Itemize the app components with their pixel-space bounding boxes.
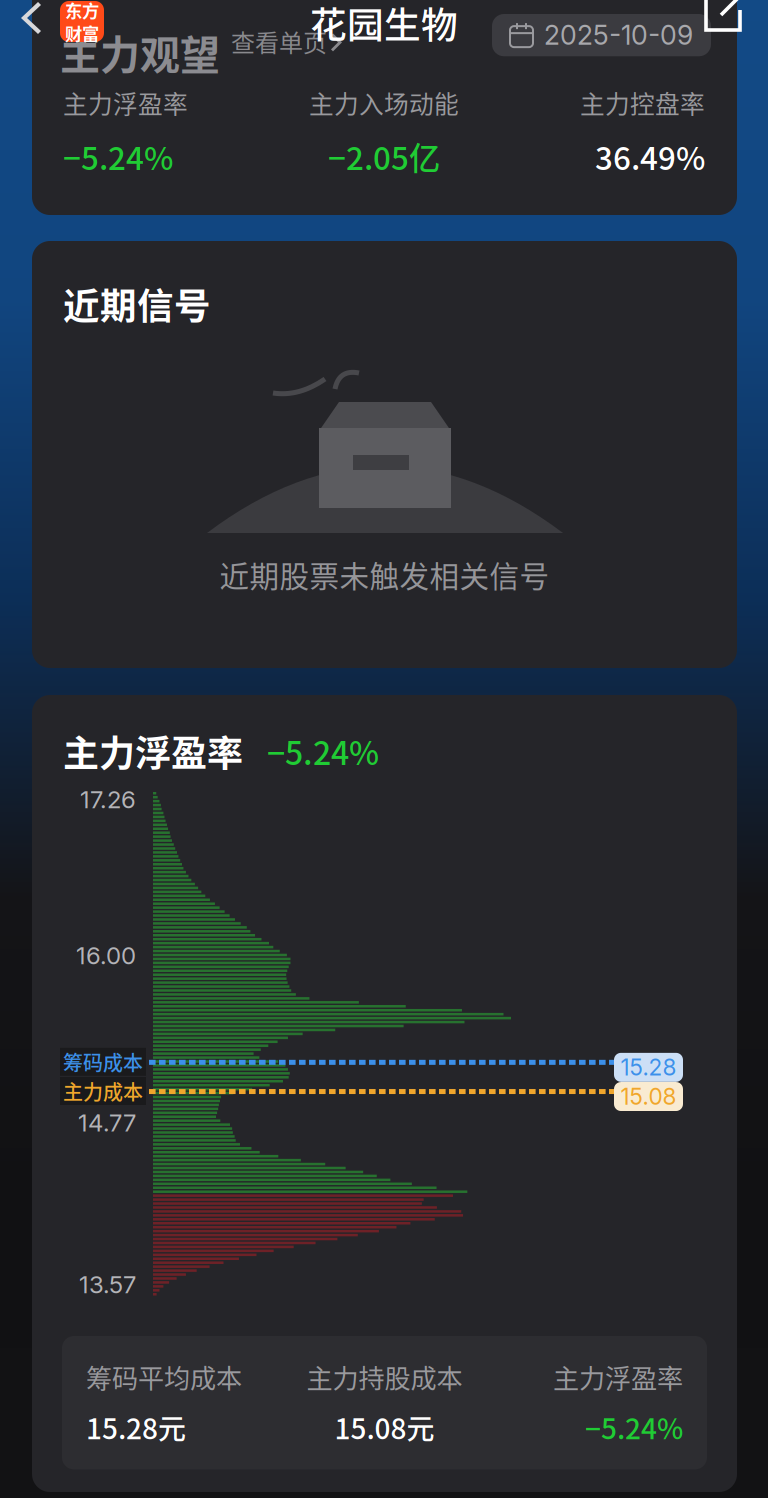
staticText: 15.08元 <box>334 1407 434 1447</box>
staticText: −5.24% <box>267 728 379 774</box>
staticText: 17.26 <box>80 785 136 814</box>
staticText: 主力浮盈率 <box>63 85 188 121</box>
staticText: 筹码平均成本 <box>86 1358 242 1396</box>
staticText: 主力控盘率 <box>580 85 705 121</box>
staticText: 东方 <box>65 0 99 22</box>
staticText: 花园生物 <box>310 0 458 49</box>
staticText: 16.00 <box>76 941 136 970</box>
staticText: 筹码成本 <box>63 1047 143 1076</box>
staticText: 近期股票未触发相关信号 <box>219 553 549 596</box>
button[interactable]: Back <box>10 0 54 41</box>
staticText: 主力入场动能 <box>309 85 459 121</box>
staticText: −5.24% <box>585 1407 683 1447</box>
button[interactable]: Share <box>702 0 748 38</box>
staticText: 15.08 <box>620 1083 676 1110</box>
staticText: 13.57 <box>79 1270 136 1299</box>
staticText: 主力持股成本 <box>306 1358 462 1396</box>
staticText: 36.49% <box>595 134 705 179</box>
staticText: −5.24% <box>63 134 173 179</box>
staticText: 15.28 <box>620 1054 676 1081</box>
staticText: 2025-10-09 <box>544 19 693 51</box>
staticText: 主力观望 <box>60 23 220 81</box>
staticText: 主力浮盈率 <box>553 1358 683 1396</box>
staticText: 财富 <box>65 20 99 46</box>
staticText: 主力成本 <box>63 1077 143 1106</box>
staticText: 近期信号 <box>63 277 211 330</box>
staticText: 主力浮盈率 <box>63 725 243 777</box>
staticText: 查看单页 <box>231 24 327 59</box>
staticText: −2.05亿 <box>328 134 440 179</box>
button[interactable]: 2025-10-09 <box>492 14 711 56</box>
staticText: 14.77 <box>78 1108 136 1137</box>
button[interactable]: 查看单页 <box>231 24 347 59</box>
staticText: 15.28元 <box>86 1407 186 1447</box>
